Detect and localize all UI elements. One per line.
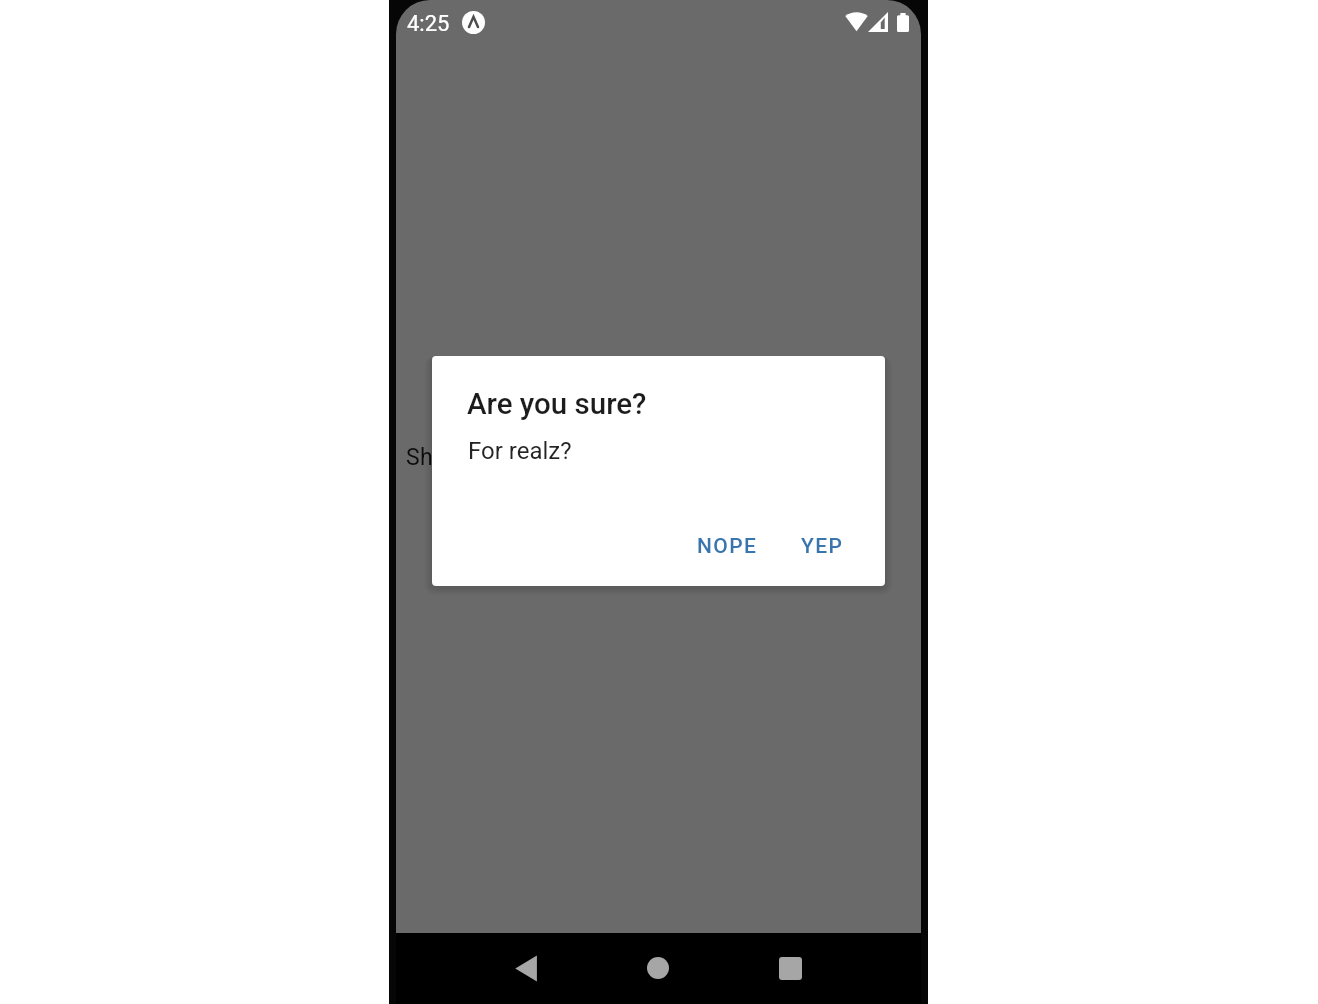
other: Mobile signal: [868, 12, 888, 32]
staticText: Are you sure?: [467, 387, 647, 422]
button[interactable]: Recent apps: [768, 946, 812, 990]
staticText: YEP: [801, 534, 844, 559]
button[interactable]: Home: [636, 946, 680, 990]
staticText: Show dialog: [406, 444, 536, 471]
other: Wi-Fi signal: [840, 8, 874, 38]
staticText: NOPE: [697, 534, 758, 559]
button[interactable]: Back: [504, 946, 548, 990]
button[interactable]: Show dialog: [396, 430, 550, 485]
other: App notification: [462, 11, 485, 34]
staticText: For realz?: [468, 437, 572, 465]
button[interactable]: NOPE: [683, 525, 772, 568]
button[interactable]: YEP: [787, 525, 858, 568]
staticText: 4:25: [407, 11, 450, 37]
other: Battery full: [897, 13, 909, 32]
